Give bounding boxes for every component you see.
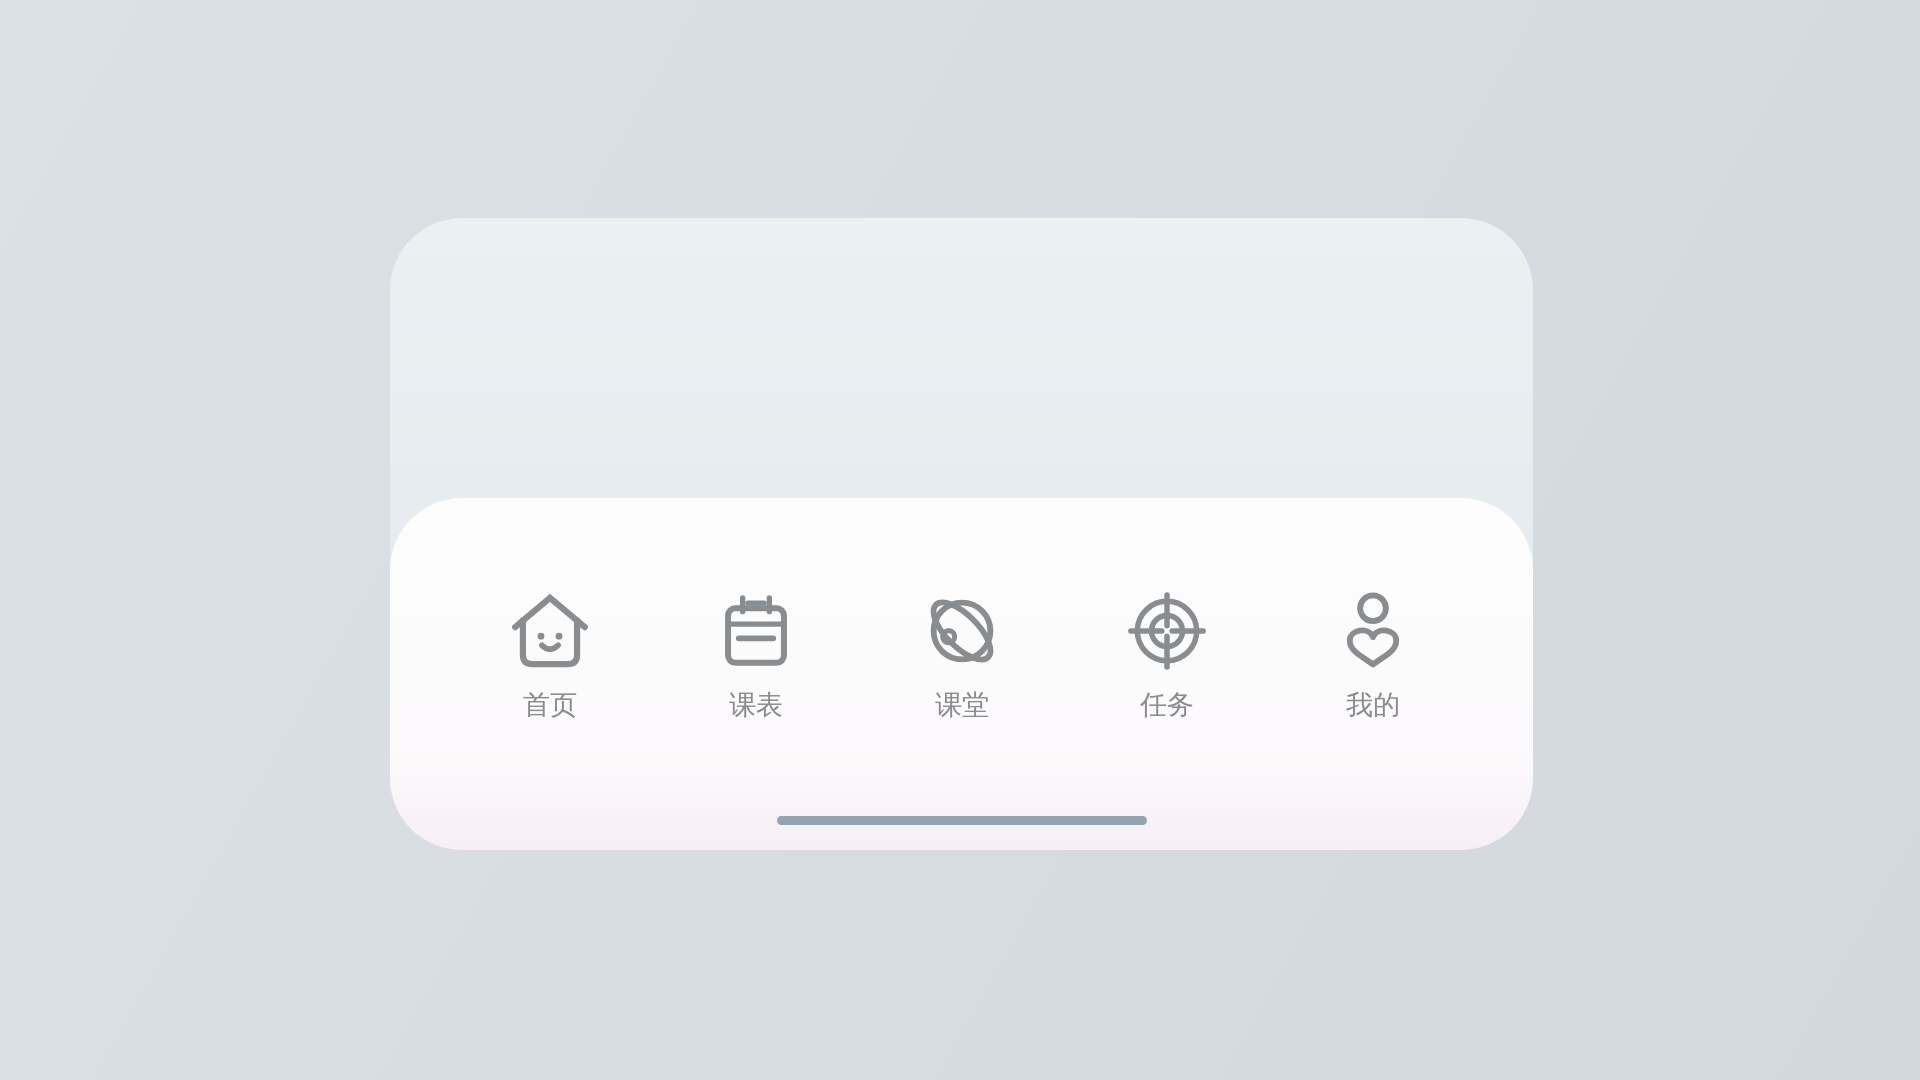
- button[interactable]: 课表: [686, 588, 826, 722]
- staticText: 课表: [729, 688, 783, 722]
- button[interactable]: 我的: [1303, 588, 1443, 722]
- staticText: 任务: [1140, 688, 1194, 722]
- staticText: 首页: [523, 688, 577, 722]
- staticText: 我的: [1346, 688, 1400, 722]
- button[interactable]: 首页: [480, 588, 620, 722]
- button[interactable]: 任务: [1097, 588, 1237, 722]
- button[interactable]: 课堂: [892, 588, 1032, 722]
- staticText: 课堂: [935, 688, 989, 722]
